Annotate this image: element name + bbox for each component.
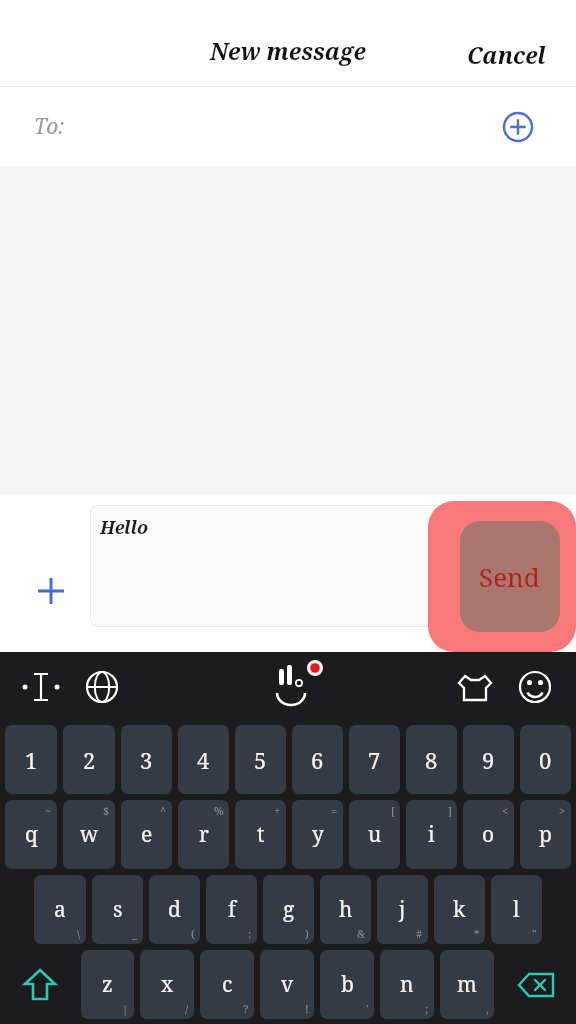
button[interactable]: i — [406, 800, 457, 869]
button[interactable]: t — [235, 800, 286, 869]
button[interactable]: f — [206, 875, 257, 944]
staticText: + — [274, 803, 281, 818]
staticText: ^ — [160, 803, 167, 818]
button[interactable]: Gestures — [268, 664, 314, 710]
staticText: 3 — [140, 745, 153, 775]
button[interactable]: 5 — [235, 725, 286, 794]
staticText: ~ — [45, 803, 52, 818]
staticText: n — [400, 970, 414, 999]
staticText: = — [331, 803, 338, 818]
staticText: ? — [243, 1001, 249, 1016]
staticText: New message — [210, 35, 366, 66]
staticText: % — [214, 803, 224, 818]
button[interactable]: m — [440, 950, 494, 1019]
staticText: & — [357, 926, 366, 941]
button[interactable]: s — [92, 875, 143, 944]
button[interactable]: 8 — [406, 725, 457, 794]
staticText: ' — [366, 1001, 369, 1016]
staticText: l — [513, 895, 520, 924]
staticText: : — [248, 926, 252, 941]
button[interactable]: 7 — [349, 725, 400, 794]
staticText: 6 — [311, 745, 324, 775]
button[interactable]: Backspace — [500, 950, 571, 1019]
button[interactable]: o — [463, 800, 514, 869]
staticText: z — [102, 970, 113, 999]
button[interactable]: 2 — [63, 725, 115, 794]
button[interactable]: n — [380, 950, 434, 1019]
staticText: _ — [132, 926, 138, 941]
staticText: s — [113, 895, 123, 924]
button[interactable]: q — [5, 800, 57, 869]
staticText: 7 — [368, 745, 381, 775]
button[interactable]: l — [491, 875, 542, 944]
staticText: 4 — [197, 745, 210, 775]
button[interactable]: h — [320, 875, 371, 944]
button[interactable]: 4 — [178, 725, 229, 794]
button[interactable]: r — [178, 800, 229, 869]
staticText: ) — [305, 926, 309, 941]
button[interactable]: b — [320, 950, 374, 1019]
button[interactable]: e — [121, 800, 172, 869]
staticText: 1 — [25, 745, 38, 775]
button[interactable]: z — [81, 950, 134, 1019]
button[interactable]: 1 — [5, 725, 57, 794]
button[interactable]: 0 — [520, 725, 571, 794]
staticText: , — [486, 1001, 489, 1016]
staticText: y — [312, 820, 324, 849]
staticText: ( — [191, 926, 195, 941]
staticText: \ — [77, 926, 81, 941]
button[interactable]: p — [520, 800, 571, 869]
button[interactable]: Stickers — [452, 664, 498, 710]
staticText: w — [80, 820, 99, 849]
button[interactable]: 6 — [292, 725, 343, 794]
button[interactable]: g — [263, 875, 314, 944]
button[interactable]: w — [63, 800, 115, 869]
staticText: q — [25, 820, 38, 849]
staticText: > — [559, 803, 566, 818]
staticText: ] — [448, 803, 452, 818]
button[interactable]: Cancel — [463, 35, 550, 74]
button[interactable]: x — [140, 950, 194, 1019]
button[interactable]: Shift — [5, 950, 75, 1019]
button[interactable]: Add attachment — [29, 569, 73, 613]
staticText: # — [416, 926, 423, 941]
staticText: x — [161, 970, 174, 999]
staticText: p — [539, 820, 552, 849]
staticText: k — [453, 895, 466, 924]
button[interactable]: Change language — [79, 664, 125, 710]
staticText: 2 — [83, 745, 96, 775]
staticText: Hello — [100, 515, 149, 540]
staticText: ! — [305, 1001, 309, 1016]
staticText: m — [457, 970, 477, 999]
staticText: < — [502, 803, 509, 818]
staticText: g — [283, 895, 295, 924]
staticText: Send — [479, 559, 540, 594]
button[interactable]: v — [260, 950, 314, 1019]
button[interactable]: Hello — [90, 505, 556, 627]
staticText: e — [141, 820, 153, 849]
button[interactable]: d — [149, 875, 200, 944]
button[interactable]: y — [292, 800, 343, 869]
button[interactable]: 3 — [121, 725, 172, 794]
button[interactable]: c — [200, 950, 254, 1019]
button[interactable]: u — [349, 800, 400, 869]
staticText: v — [281, 970, 294, 999]
staticText: * — [474, 926, 480, 941]
button[interactable]: j — [377, 875, 428, 944]
staticText: $ — [103, 803, 110, 818]
staticText: b — [341, 970, 354, 999]
staticText: " — [532, 926, 537, 941]
staticText: | — [122, 1001, 129, 1016]
staticText: j — [399, 895, 406, 924]
staticText: i — [428, 820, 435, 849]
button[interactable]: 9 — [463, 725, 514, 794]
button[interactable]: Send — [428, 501, 576, 652]
button[interactable]: Emoji — [512, 664, 558, 710]
staticText: f — [228, 895, 236, 924]
staticText: h — [339, 895, 353, 924]
button[interactable]: Add recipient — [501, 110, 535, 144]
staticText: 5 — [254, 745, 267, 775]
button[interactable]: a — [34, 875, 86, 944]
button[interactable]: Text cursor — [18, 664, 64, 710]
button[interactable]: k — [434, 875, 485, 944]
